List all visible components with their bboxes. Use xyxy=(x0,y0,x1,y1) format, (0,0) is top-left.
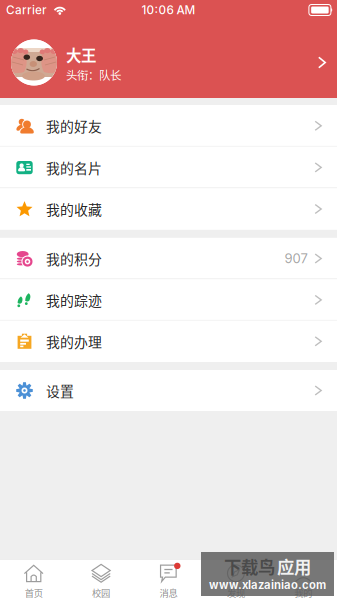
staticText: 头衔：队长 xyxy=(66,66,121,83)
button[interactable]: 我的名片 xyxy=(0,147,337,188)
staticText: 我的踪迹 xyxy=(46,290,102,310)
staticText: 我的收藏 xyxy=(46,199,102,219)
button[interactable]: 我的踪迹 xyxy=(0,279,337,321)
staticText: 我的积分 xyxy=(46,248,102,269)
staticText: 消息 xyxy=(159,586,177,599)
staticText: 我的 xyxy=(294,586,312,599)
button[interactable]: 设置 xyxy=(0,370,337,411)
staticText: Carrier xyxy=(6,3,47,17)
staticText: 我的好友 xyxy=(46,116,102,136)
staticText: 发现 xyxy=(227,586,245,599)
staticText: 10:06 AM xyxy=(141,3,195,17)
staticText: 下载鸟 xyxy=(224,554,275,579)
staticText: 907 xyxy=(284,251,307,266)
button[interactable]: 大王 xyxy=(0,20,337,98)
staticText: 我的名片 xyxy=(46,157,102,177)
staticText: 大王 xyxy=(66,44,96,66)
button[interactable]: 我的好友 xyxy=(0,105,337,147)
staticText: 我的办理 xyxy=(46,331,102,351)
staticText: 设置 xyxy=(46,380,74,401)
button[interactable]: 发现 xyxy=(202,559,270,600)
button[interactable]: 首页 xyxy=(0,559,67,600)
staticText: 校园 xyxy=(92,586,110,599)
button[interactable]: 消息 xyxy=(135,559,202,600)
staticText: 应用 xyxy=(277,554,311,579)
button[interactable]: 我的收藏 xyxy=(0,188,337,230)
button[interactable]: 我的积分 xyxy=(0,238,337,279)
button[interactable]: 我的 xyxy=(270,559,337,600)
button[interactable]: 我的办理 xyxy=(0,321,337,362)
button[interactable]: 校园 xyxy=(67,559,135,600)
staticText: 首页 xyxy=(25,586,43,599)
staticText: www.xlazainiao.com xyxy=(209,578,326,592)
